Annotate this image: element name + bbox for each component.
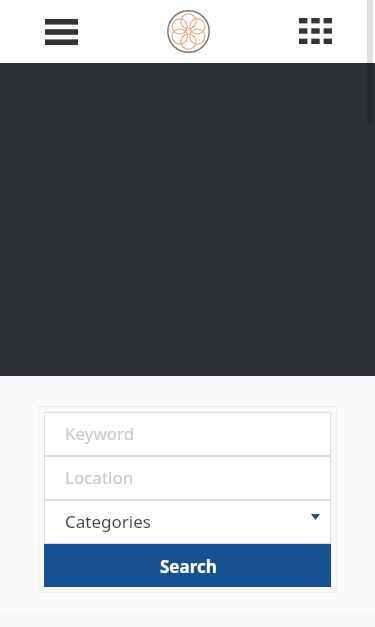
button[interactable]: Search xyxy=(44,544,331,587)
staticText: Categories xyxy=(65,510,151,533)
button[interactable]: Categories xyxy=(44,500,331,544)
staticText: Keyword xyxy=(65,422,135,445)
button[interactable]: Menu xyxy=(36,9,86,54)
button[interactable]: Grid view xyxy=(291,7,339,55)
button[interactable]: Location xyxy=(44,456,331,500)
staticText: Location xyxy=(65,466,134,489)
staticText: Search xyxy=(160,555,217,578)
button[interactable]: Home xyxy=(164,7,212,55)
button[interactable]: Keyword xyxy=(44,412,331,456)
